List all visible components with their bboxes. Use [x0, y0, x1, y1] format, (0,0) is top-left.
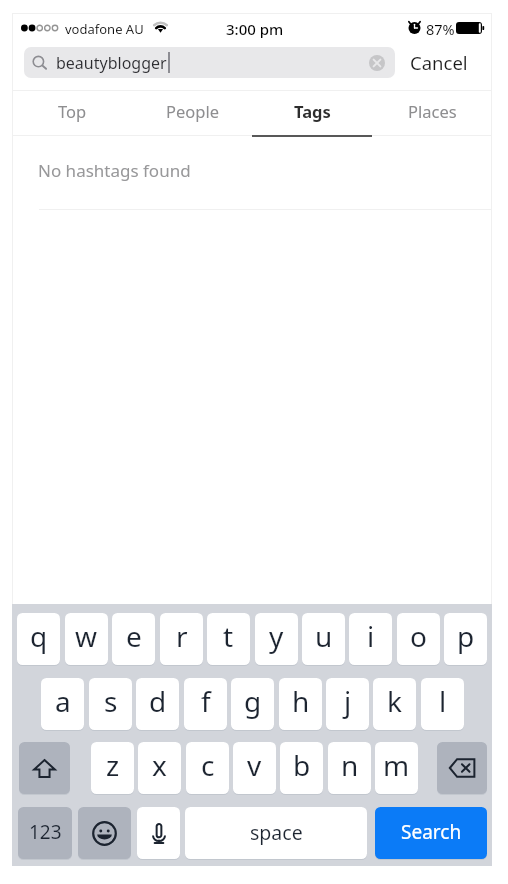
staticText: 123 [29, 819, 62, 845]
button[interactable]: Voice input [137, 807, 180, 859]
staticText: Places [408, 100, 457, 122]
staticText: y [269, 617, 284, 655]
staticText: k [387, 682, 402, 720]
button[interactable]: d [136, 678, 179, 730]
staticText: p [457, 617, 475, 655]
button[interactable]: Emoji [78, 807, 131, 859]
staticText: e [126, 617, 142, 655]
staticText: u [315, 617, 333, 655]
button[interactable]: k [373, 678, 416, 730]
button[interactable]: j [326, 678, 369, 730]
button[interactable]: q [17, 613, 60, 665]
staticText: s [104, 682, 118, 720]
staticText: o [410, 617, 427, 655]
button[interactable]: t [207, 613, 250, 665]
button[interactable]: h [279, 678, 322, 730]
button[interactable]: 123 [18, 807, 72, 859]
staticText: People [166, 100, 219, 122]
staticText: g [244, 682, 262, 720]
staticText: l [439, 682, 447, 720]
button[interactable]: g [231, 678, 274, 730]
other: Shift [33, 758, 56, 779]
button[interactable]: Tags [252, 90, 372, 136]
staticText: q [30, 617, 48, 655]
staticText: f [201, 682, 211, 720]
staticText: d [149, 682, 167, 720]
button[interactable]: o [397, 613, 440, 665]
button[interactable]: z [91, 742, 134, 794]
other: Voice input [152, 823, 166, 844]
button[interactable]: b [280, 742, 323, 794]
button[interactable]: Cancel [401, 47, 492, 78]
staticText: x [152, 746, 167, 784]
button[interactable]: Places [372, 90, 492, 136]
button[interactable]: space [185, 807, 367, 859]
staticText: m [383, 746, 410, 784]
button[interactable]: Top [12, 90, 132, 136]
staticText: v [247, 746, 262, 784]
staticText: b [293, 746, 311, 784]
staticText: Top [58, 100, 87, 122]
button[interactable]: i [349, 613, 392, 665]
staticText: Tags [294, 100, 331, 122]
button[interactable]: l [421, 678, 464, 730]
button[interactable]: u [302, 613, 345, 665]
staticText: 3:00 pm [226, 19, 284, 39]
button[interactable]: e [112, 613, 155, 665]
staticText: a [55, 682, 71, 720]
staticText: beautyblogger [56, 52, 167, 74]
other: Emoji [92, 821, 117, 846]
button[interactable]: a [41, 678, 84, 730]
staticText: z [106, 746, 120, 784]
staticText: No hashtags found [38, 159, 191, 182]
button[interactable]: Shift [19, 742, 70, 794]
button[interactable]: Search [375, 807, 487, 859]
staticText: vodafone AU [65, 20, 144, 38]
button[interactable]: Backspace [437, 742, 487, 794]
staticText: space [250, 819, 303, 846]
button[interactable]: c [186, 742, 229, 794]
button[interactable]: beautyblogger [24, 47, 395, 78]
button[interactable]: s [89, 678, 132, 730]
staticText: c [201, 746, 215, 784]
button[interactable]: p [444, 613, 487, 665]
staticText: j [344, 682, 352, 720]
staticText: n [341, 746, 359, 784]
button[interactable]: r [160, 613, 203, 665]
button[interactable]: v [233, 742, 276, 794]
staticText: w [75, 617, 98, 655]
button[interactable]: n [328, 742, 371, 794]
staticText: Cancel [410, 50, 468, 75]
button[interactable]: People [132, 90, 252, 136]
button[interactable]: y [255, 613, 298, 665]
button[interactable]: f [184, 678, 227, 730]
staticText: t [223, 617, 234, 655]
button[interactable]: w [65, 613, 108, 665]
button[interactable]: m [375, 742, 418, 794]
staticText: 87% [426, 19, 455, 39]
button[interactable]: x [138, 742, 181, 794]
other: Clear text [369, 55, 385, 71]
staticText: Search [401, 819, 462, 845]
staticText: h [292, 682, 310, 720]
other: Backspace [449, 758, 476, 778]
staticText: r [176, 617, 188, 655]
staticText: i [367, 617, 375, 655]
